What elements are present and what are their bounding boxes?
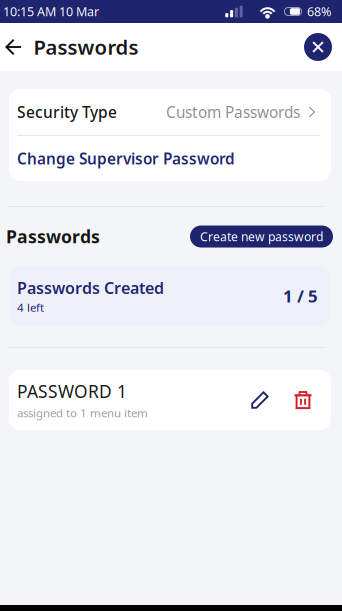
- button[interactable]: Change Supervisor Password: [9, 136, 331, 181]
- staticText: 68%: [307, 3, 331, 20]
- staticText: Passwords: [6, 224, 100, 248]
- staticText: assigned to 1 menu item: [17, 405, 148, 421]
- button[interactable]: Delete password: [284, 378, 322, 422]
- button[interactable]: Create new password: [190, 225, 333, 247]
- button[interactable]: Close: [294, 23, 342, 71]
- staticText: 1 / 5: [283, 285, 318, 307]
- staticText: Create new password: [200, 228, 323, 245]
- button[interactable]: Security Type: [9, 89, 331, 135]
- staticText: Passwords: [33, 33, 138, 61]
- staticText: Change Supervisor Password: [17, 148, 235, 169]
- staticText: Passwords Created: [17, 277, 164, 299]
- button[interactable]: Back: [0, 23, 33, 71]
- staticText: Security Type: [17, 101, 117, 123]
- staticText: 4 left: [17, 300, 44, 315]
- button[interactable]: Edit password: [241, 378, 279, 422]
- staticText: Custom Passwords: [166, 102, 300, 122]
- staticText: 10:15 AM 10 Mar: [3, 3, 99, 20]
- staticText: PASSWORD 1: [17, 379, 127, 403]
